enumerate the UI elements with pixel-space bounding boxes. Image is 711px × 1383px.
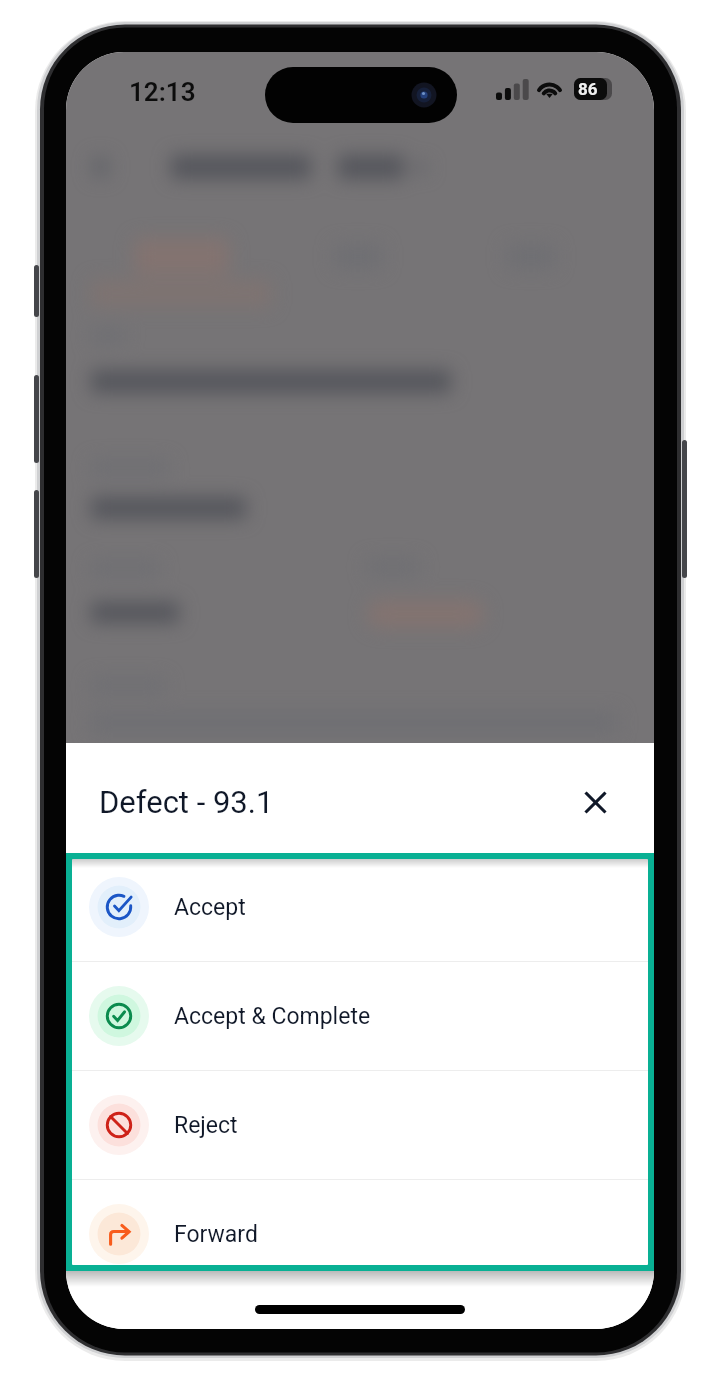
staticText: 12:13 — [129, 77, 196, 107]
staticText: Accept — [174, 894, 246, 921]
staticText: Accept & Complete — [174, 1003, 371, 1030]
button[interactable]: Accept & Complete — [72, 962, 648, 1070]
staticText: Forward — [174, 1221, 258, 1248]
button[interactable]: Accept — [72, 859, 648, 961]
staticText: Defect - 93.1 — [99, 784, 274, 820]
button[interactable]: Reject — [72, 1071, 648, 1179]
staticText: 86 — [578, 79, 598, 99]
button[interactable]: Close — [572, 779, 618, 825]
staticText: Reject — [174, 1112, 238, 1139]
button[interactable]: Forward — [72, 1180, 648, 1265]
